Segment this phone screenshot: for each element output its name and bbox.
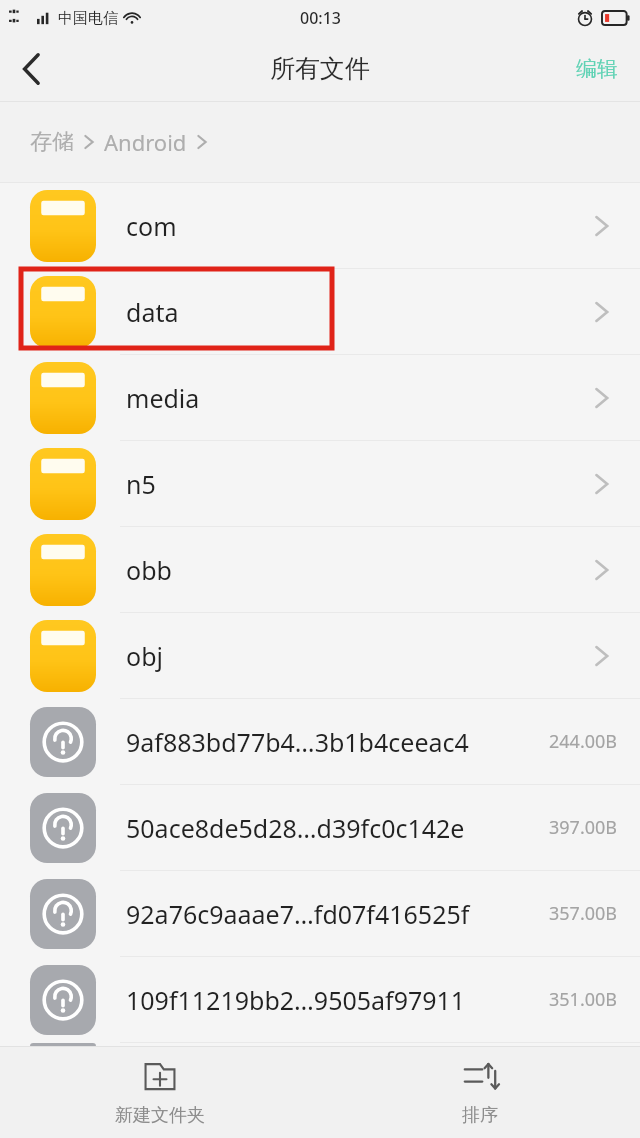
staticText: 357.00B	[549, 901, 618, 926]
staticText: media	[126, 381, 200, 415]
staticText: 新建文件夹	[115, 1104, 205, 1127]
button[interactable]: 9af883bd77b4…3b1b4ceeac4	[0, 699, 640, 785]
button[interactable]: 92a76c9aaae7…fd07f416525f	[0, 871, 640, 957]
staticText: n5	[126, 467, 156, 501]
button[interactable]: 新建文件夹	[60, 1047, 260, 1138]
staticText: com	[126, 209, 177, 243]
button[interactable]: com	[0, 183, 640, 269]
button[interactable]: n5	[0, 441, 640, 527]
button[interactable]: obb	[0, 527, 640, 613]
button[interactable]: 排序	[380, 1047, 580, 1138]
button[interactable]: data	[0, 269, 640, 355]
staticText: 244.00B	[549, 729, 618, 754]
button[interactable]: Android	[104, 127, 187, 157]
staticText: 中国电信	[58, 9, 118, 28]
staticText: 50ace8de5d28…d39fc0c142e	[126, 811, 465, 845]
staticText: Android	[104, 127, 187, 157]
staticText: 109f11219bb2…9505af97911	[126, 983, 466, 1017]
button[interactable]: 编辑	[554, 36, 640, 101]
staticText: 所有文件	[270, 53, 370, 84]
button[interactable]: media	[0, 355, 640, 441]
button[interactable]: 109f11219bb2…9505af97911	[0, 957, 640, 1043]
button[interactable]: 存储	[30, 128, 74, 156]
staticText: 397.00B	[549, 815, 618, 840]
staticText: 排序	[462, 1104, 498, 1127]
button[interactable]: Back	[0, 36, 64, 101]
staticText: 92a76c9aaae7…fd07f416525f	[126, 897, 470, 931]
staticText: obj	[126, 639, 163, 673]
staticText: 00:13	[300, 7, 341, 29]
staticText: 9af883bd77b4…3b1b4ceeac4	[126, 725, 469, 759]
staticText: 351.00B	[549, 987, 618, 1012]
button[interactable]	[0, 1043, 640, 1046]
staticText: obb	[126, 553, 172, 587]
staticText: data	[126, 295, 179, 329]
button[interactable]: 50ace8de5d28…d39fc0c142e	[0, 785, 640, 871]
staticText: 存储	[30, 128, 74, 156]
button[interactable]: obj	[0, 613, 640, 699]
staticText: 编辑	[576, 56, 618, 82]
